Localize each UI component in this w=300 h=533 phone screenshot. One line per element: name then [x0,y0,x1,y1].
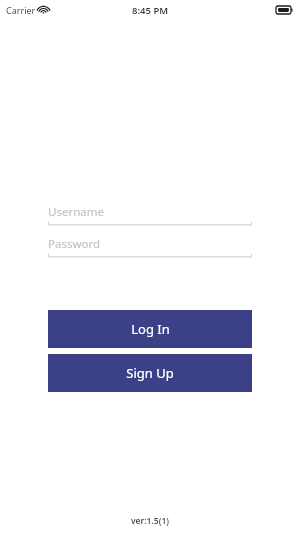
staticText: 8:45 PM [132,4,169,17]
staticText: Carrier [6,4,36,16]
button[interactable]: Username text field [48,204,252,226]
button[interactable]: Log In [48,310,252,348]
staticText: Password [48,236,101,252]
button[interactable]: Sign Up [48,354,252,392]
staticText: Sign Up [126,364,174,382]
staticText: Username [48,204,104,220]
staticText: ver:1.5(1) [0,515,300,527]
button[interactable]: Password text field [48,236,252,258]
staticText: Log In [131,320,170,338]
